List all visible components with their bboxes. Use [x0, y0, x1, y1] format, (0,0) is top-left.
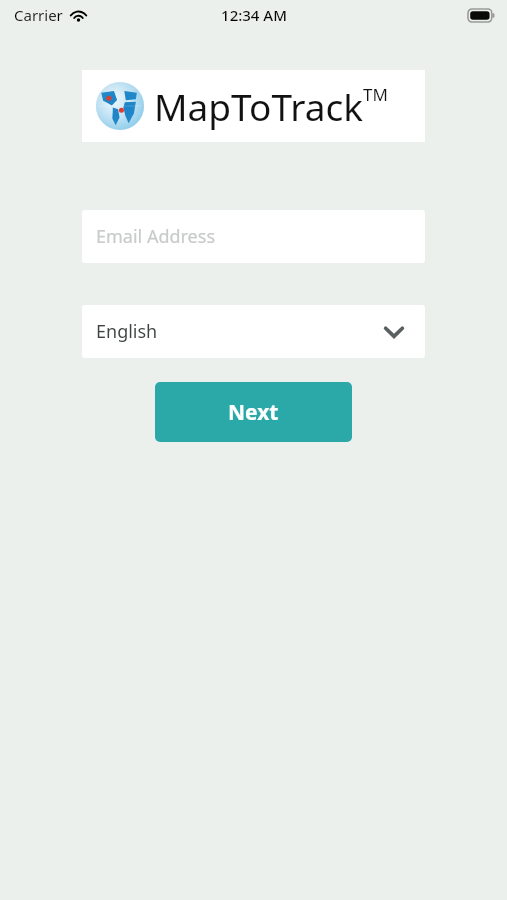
- button[interactable]: English: [82, 305, 425, 358]
- staticText: Carrier: [14, 5, 63, 25]
- staticText: TM: [363, 83, 388, 106]
- button[interactable]: Next: [155, 382, 352, 442]
- button[interactable]: Email Address: [82, 210, 425, 263]
- staticText: Next: [228, 398, 279, 427]
- staticText: 12:34 AM: [221, 5, 287, 25]
- staticText: MapToTrack: [154, 81, 363, 131]
- staticText: English: [96, 319, 158, 344]
- staticText: Email Address: [96, 224, 216, 249]
